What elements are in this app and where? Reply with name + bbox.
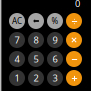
button[interactable]: 4 — [9, 51, 25, 67]
staticText: 9 — [52, 34, 57, 46]
staticText: AC — [12, 16, 22, 26]
button[interactable]: 9 — [47, 32, 63, 48]
button[interactable]: % — [47, 13, 63, 29]
staticText: 2 — [33, 72, 38, 84]
staticText: 5 — [33, 53, 38, 65]
button[interactable]: 1 — [9, 70, 25, 86]
button[interactable]: Minus — [66, 51, 82, 67]
button[interactable]: Multiply — [66, 32, 82, 48]
staticText: 3 — [52, 72, 57, 84]
staticText: 1 — [14, 72, 19, 84]
button[interactable]: 7 — [9, 32, 25, 48]
staticText: % — [51, 16, 58, 26]
button[interactable]: Plus — [66, 70, 82, 86]
button[interactable]: 6 — [47, 51, 63, 67]
staticText: 8 — [33, 34, 38, 46]
staticText: 7 — [14, 34, 19, 46]
staticText: 6 — [52, 53, 57, 65]
button[interactable]: AC — [9, 13, 25, 29]
staticText: 0 — [75, 0, 80, 10]
button[interactable]: 3 — [47, 70, 63, 86]
button[interactable]: 2 — [28, 70, 44, 86]
button[interactable]: 8 — [28, 32, 44, 48]
button[interactable]: Delete — [28, 13, 44, 29]
button[interactable]: 5 — [28, 51, 44, 67]
staticText: 4 — [14, 53, 19, 65]
button[interactable]: Divide — [66, 13, 82, 29]
